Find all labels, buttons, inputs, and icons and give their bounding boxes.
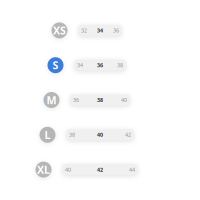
staticText: 36 — [113, 27, 119, 34]
staticText: 40 — [97, 131, 103, 138]
staticText: 38 — [117, 62, 123, 69]
staticText: 42 — [125, 131, 131, 138]
staticText: 34 — [97, 27, 103, 34]
staticText: XS — [53, 23, 66, 37]
staticText: 38 — [69, 131, 75, 138]
staticText: S — [52, 58, 58, 72]
button[interactable]: L — [39, 127, 133, 143]
staticText: L — [44, 128, 50, 142]
button[interactable]: XL — [35, 162, 137, 178]
staticText: 40 — [121, 96, 127, 104]
staticText: 36 — [97, 62, 103, 69]
button[interactable]: XS — [51, 22, 121, 38]
staticText: 40 — [65, 166, 71, 173]
button[interactable]: S — [47, 57, 125, 73]
staticText: 32 — [81, 27, 87, 34]
staticText: XL — [37, 162, 50, 177]
staticText: 42 — [97, 166, 103, 173]
staticText: 38 — [97, 96, 103, 104]
staticText: M — [46, 93, 56, 107]
staticText: 36 — [73, 96, 79, 104]
staticText: 34 — [77, 62, 83, 69]
staticText: 44 — [129, 166, 135, 173]
button[interactable]: M — [43, 92, 129, 108]
